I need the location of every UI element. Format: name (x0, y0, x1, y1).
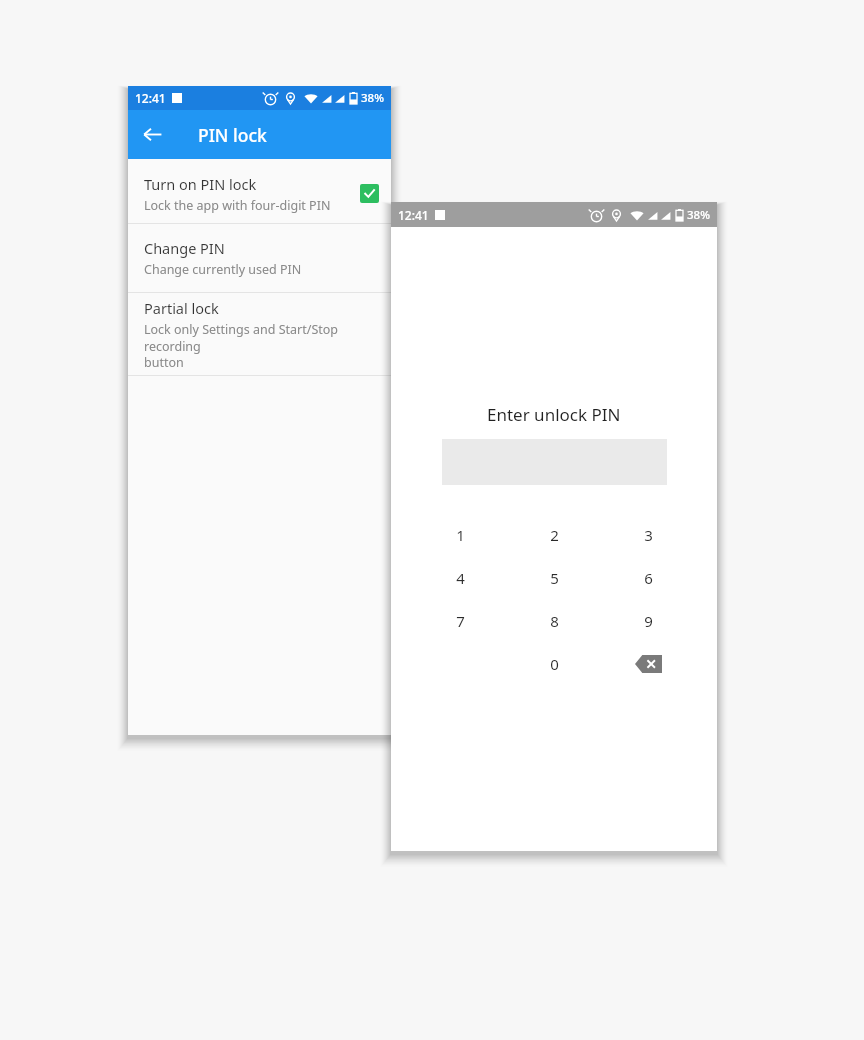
staticText: 12:41 (398, 207, 429, 223)
button[interactable]: 3 (601, 513, 695, 556)
button[interactable]: 2 (507, 513, 601, 556)
staticText: 7 (456, 611, 465, 631)
staticText: Enter unlock PIN (487, 403, 621, 426)
button[interactable]: 8 (507, 599, 601, 642)
button[interactable]: 7 (413, 599, 507, 642)
staticText: PIN lock (198, 123, 267, 147)
staticText: 2 (550, 525, 559, 545)
staticText: Lock the app with four-digit PIN (144, 197, 331, 214)
staticText: 1 (456, 525, 465, 545)
button[interactable]: Backspace (601, 642, 695, 685)
button[interactable]: 6 (601, 556, 695, 599)
button[interactable]: 1 (413, 513, 507, 556)
button[interactable]: 9 (601, 599, 695, 642)
button[interactable]: Change PIN (128, 224, 391, 292)
staticText: 6 (644, 568, 653, 588)
button[interactable]: 0 (507, 642, 601, 685)
staticText: 12:41 (135, 90, 166, 106)
button[interactable]: Partial lock (128, 293, 391, 375)
staticText: 8 (550, 611, 559, 631)
staticText: 5 (550, 568, 559, 588)
button[interactable]: Turn on PIN lock checkbox (360, 184, 379, 203)
staticText: 4 (456, 568, 465, 588)
staticText: 9 (644, 611, 653, 631)
staticText: Change PIN (144, 238, 225, 258)
staticText: Lock only Settings and Start/Stop record… (144, 321, 379, 370)
button[interactable]: Back (128, 110, 177, 159)
staticText: 38% (361, 90, 384, 106)
staticText: Change currently used PIN (144, 261, 302, 278)
button[interactable]: 5 (507, 556, 601, 599)
staticText: 38% (687, 207, 710, 223)
button[interactable]: 4 (413, 556, 507, 599)
staticText: Turn on PIN lock (144, 174, 257, 194)
staticText: 3 (644, 525, 653, 545)
staticText: 0 (550, 654, 559, 674)
button[interactable]: Turn on PIN lock (128, 164, 391, 223)
staticText: Partial lock (144, 298, 219, 318)
